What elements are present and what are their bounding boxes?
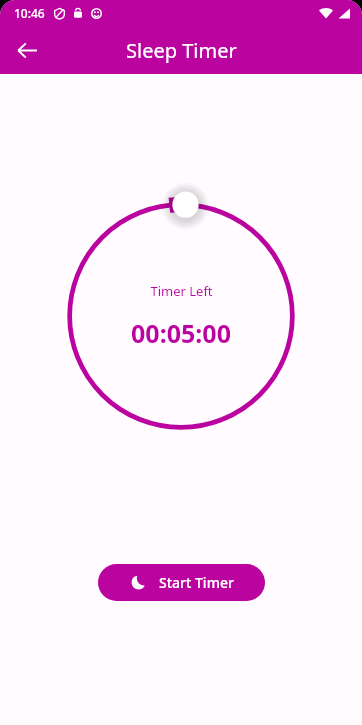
staticText: Sleep Timer	[126, 37, 237, 64]
staticText: Start Timer	[159, 573, 234, 592]
staticText: Timer Left	[150, 282, 213, 300]
button[interactable]: Back	[6, 29, 48, 71]
button[interactable]: Start Timer	[98, 564, 265, 601]
staticText: 00:05:00	[131, 316, 231, 350]
staticText: 10:46	[14, 5, 45, 21]
